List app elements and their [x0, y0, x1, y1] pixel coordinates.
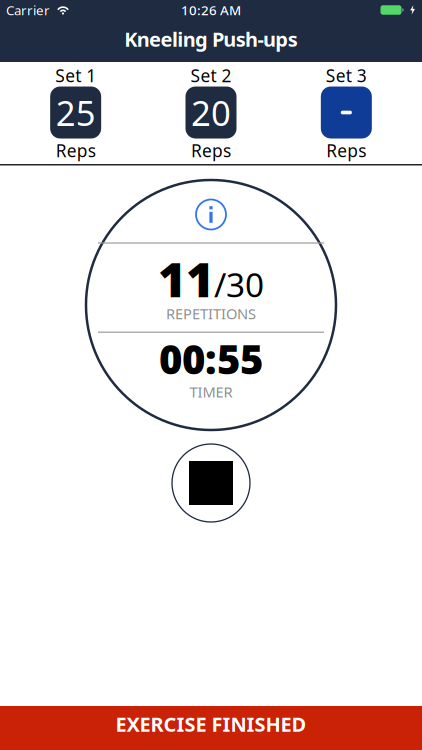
staticText: Reps [326, 139, 366, 162]
staticText: 10:26 AM [181, 1, 241, 19]
staticText: 11 [158, 247, 214, 310]
button[interactable]: Stop [172, 444, 250, 522]
button[interactable]: Set 1 reps [50, 86, 101, 138]
staticText: 00:55 [159, 332, 263, 385]
button[interactable]: Exercise info [196, 199, 226, 229]
staticText: Reps [56, 139, 96, 162]
staticText: REPETITIONS [166, 304, 256, 323]
button[interactable]: Set 2 reps [185, 86, 236, 138]
staticText: Carrier [6, 1, 50, 19]
staticText: Kneeling Push-ups [124, 26, 298, 52]
staticText: 25 [56, 89, 96, 135]
staticText: TIMER [189, 382, 232, 402]
staticText: Set 2 [190, 64, 231, 87]
staticText: EXERCISE FINISHED [115, 711, 306, 737]
staticText: Reps [191, 139, 231, 162]
staticText: Set 3 [326, 64, 367, 87]
staticText: Set 1 [55, 64, 96, 87]
button[interactable]: EXERCISE FINISHED [0, 706, 422, 750]
staticText: /30 [214, 262, 264, 306]
button[interactable]: Set 3 reps [321, 86, 372, 138]
staticText: 20 [191, 89, 231, 135]
